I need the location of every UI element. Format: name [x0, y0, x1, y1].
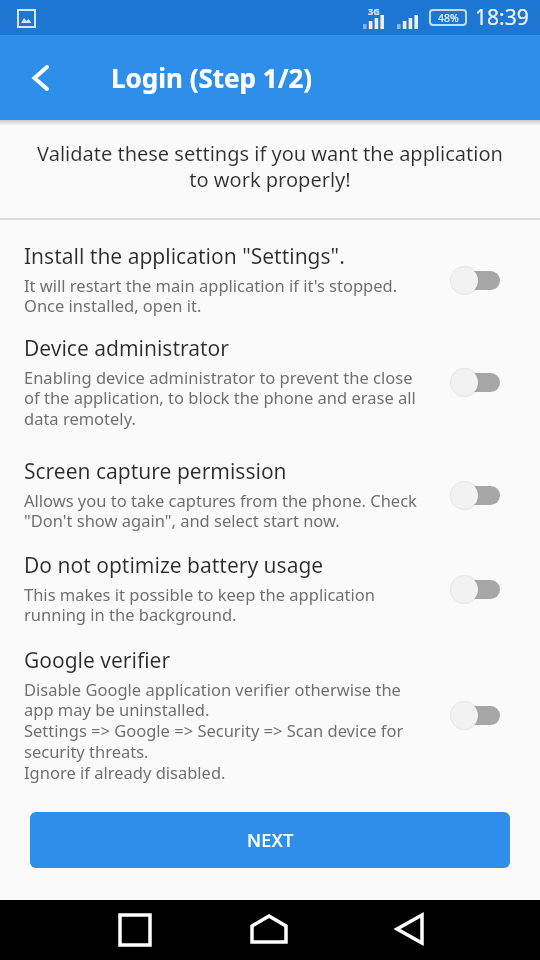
button[interactable]: Install the application "Settings".: [24, 242, 500, 317]
staticText: NEXT: [247, 828, 294, 853]
staticText: Disable Google application verifier othe…: [24, 678, 404, 784]
button[interactable]: [450, 480, 500, 510]
button[interactable]: [0, 900, 180, 960]
button[interactable]: [450, 574, 500, 604]
button[interactable]: Do not optimize battery usage: [24, 551, 500, 626]
staticText: This makes it possible to keep the appli…: [24, 583, 375, 626]
button[interactable]: [450, 700, 500, 730]
button[interactable]: Device administrator: [24, 334, 500, 430]
staticText: Do not optimize battery usage: [24, 551, 324, 580]
staticText: 3G: [368, 5, 380, 17]
button[interactable]: Screen capture permission: [24, 457, 500, 532]
button[interactable]: Google verifier: [24, 646, 500, 784]
button[interactable]: [180, 900, 360, 960]
staticText: Validate these settings if you want the …: [0, 140, 540, 192]
button[interactable]: [16, 47, 64, 109]
staticText: Screen capture permission: [24, 457, 287, 486]
button[interactable]: NEXT: [30, 812, 510, 868]
staticText: 48%: [438, 11, 459, 25]
button[interactable]: [450, 367, 500, 397]
button[interactable]: [360, 900, 540, 960]
staticText: 18:39: [475, 3, 529, 32]
staticText: Login (Step 1/2): [111, 60, 313, 95]
button[interactable]: [450, 265, 500, 295]
staticText: Install the application "Settings".: [24, 242, 345, 271]
staticText: It will restart the main application if …: [24, 274, 398, 317]
button[interactable]: [108, 903, 162, 957]
staticText: Enabling device administrator to prevent…: [24, 366, 416, 430]
staticText: Device administrator: [24, 334, 230, 363]
staticText: Google verifier: [24, 646, 171, 675]
staticText: Allows you to take captures from the pho…: [24, 489, 417, 532]
